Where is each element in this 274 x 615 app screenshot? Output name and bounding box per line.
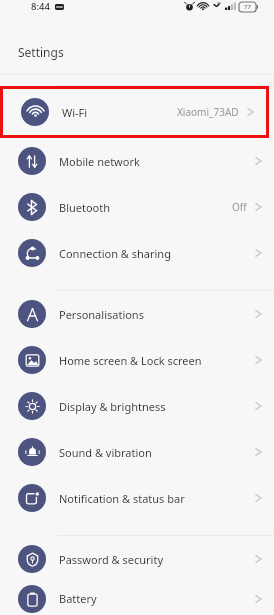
staticText: Home screen & Lock screen <box>59 353 202 368</box>
button[interactable]: Notification & status bar <box>0 475 274 521</box>
staticText: Personalisations <box>59 307 144 322</box>
button[interactable]: Mobile network <box>0 138 274 184</box>
staticText: Connection & sharing <box>59 246 171 261</box>
button[interactable]: Personalisations <box>0 291 274 337</box>
staticText: Sound & vibration <box>59 445 152 460</box>
staticText: Mobile network <box>59 154 140 169</box>
button[interactable]: Password & security <box>0 536 274 582</box>
button[interactable]: Display & brightness <box>0 383 274 429</box>
staticText: Bluetooth <box>59 200 111 215</box>
staticText: Settings <box>18 44 64 60</box>
staticText: Display & brightness <box>59 399 166 414</box>
staticText: Battery <box>59 591 97 606</box>
staticText: 8:44 <box>31 0 50 13</box>
staticText: 77 <box>244 3 251 11</box>
button[interactable]: Home screen & Lock screen <box>0 337 274 383</box>
staticText: Wi-Fi <box>62 105 88 120</box>
button[interactable]: Bluetooth <box>0 184 274 230</box>
staticText: Xiaomi_73AD <box>177 105 239 119</box>
button[interactable]: Connection & sharing <box>0 230 274 276</box>
button[interactable]: Battery <box>0 582 274 615</box>
staticText: Password & security <box>59 552 164 567</box>
staticText: Notification & status bar <box>59 491 185 506</box>
button[interactable]: Sound & vibration <box>0 429 274 475</box>
staticText: Off <box>232 200 247 214</box>
button[interactable]: Wi-Fi <box>3 89 266 135</box>
